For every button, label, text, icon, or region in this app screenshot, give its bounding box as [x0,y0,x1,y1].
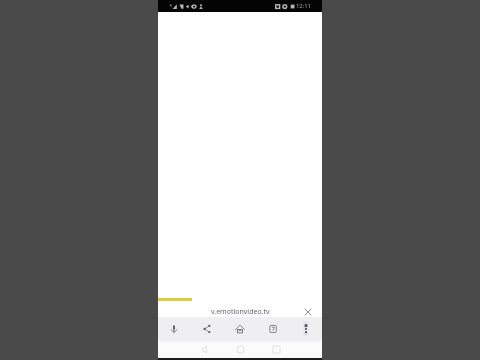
button[interactable]: Voice search [158,317,190,340]
button[interactable]: Home [223,317,256,340]
button[interactable]: Recents [267,341,285,358]
staticText: v.emotionvideo.tv [211,307,270,317]
button[interactable]: Stop loading [301,305,314,318]
button[interactable]: Back [195,341,213,358]
button[interactable]: Share [190,317,223,340]
button[interactable]: More options [289,317,322,340]
button[interactable]: Home [231,341,249,358]
button[interactable]: Tabs [256,317,289,340]
staticText: 12:11 [296,2,311,10]
